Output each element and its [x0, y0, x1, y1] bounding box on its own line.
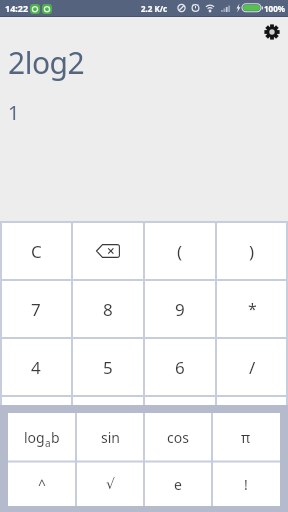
button[interactable]: 4 — [0, 338, 72, 396]
button[interactable] — [72, 222, 144, 280]
button[interactable]: / — [216, 338, 288, 396]
staticText: * — [248, 298, 257, 320]
button[interactable]: 9 — [144, 280, 216, 338]
button[interactable]: cos — [144, 413, 212, 461]
staticText: 9 — [175, 298, 185, 321]
staticText: ! — [244, 475, 248, 494]
staticText: ) — [249, 240, 255, 263]
staticText: e — [174, 475, 182, 494]
button[interactable]: 5 — [72, 338, 144, 396]
staticText: 1 — [8, 99, 20, 126]
button[interactable] — [258, 18, 286, 46]
button[interactable]: C — [0, 222, 72, 280]
staticText: 4 — [31, 356, 41, 379]
button[interactable]: ! — [212, 462, 280, 506]
button[interactable]: * — [216, 280, 288, 338]
staticText: 7 — [31, 298, 41, 321]
button[interactable]: e — [144, 462, 212, 506]
staticText: 100% — [264, 3, 285, 14]
staticText: b — [51, 428, 60, 447]
staticText: 6 — [175, 356, 185, 379]
button[interactable]: 8 — [72, 280, 144, 338]
staticText: ^ — [38, 475, 47, 494]
button[interactable]: π — [212, 413, 280, 461]
staticText: log — [24, 428, 45, 447]
button[interactable]: ^ — [8, 462, 76, 506]
button[interactable]: 6 — [144, 338, 216, 396]
staticText: cos — [167, 428, 189, 447]
staticText: / — [249, 356, 256, 379]
staticText: C — [31, 240, 42, 263]
button[interactable]: log — [8, 413, 76, 461]
staticText: π — [241, 428, 251, 447]
staticText: √ — [106, 476, 115, 492]
staticText: 2.2 K/c — [141, 3, 168, 14]
button[interactable]: 7 — [0, 280, 72, 338]
staticText: 14:22 — [5, 2, 29, 14]
staticText: 5 — [103, 356, 113, 379]
staticText: a — [45, 436, 51, 450]
staticText: 8 — [103, 298, 113, 321]
button[interactable]: ) — [216, 222, 288, 280]
staticText: 2log2 — [8, 42, 85, 83]
staticText: ( — [177, 240, 183, 263]
button[interactable]: sin — [76, 413, 144, 461]
button[interactable]: √ — [76, 462, 144, 506]
button[interactable]: ( — [144, 222, 216, 280]
staticText: sin — [101, 428, 120, 447]
